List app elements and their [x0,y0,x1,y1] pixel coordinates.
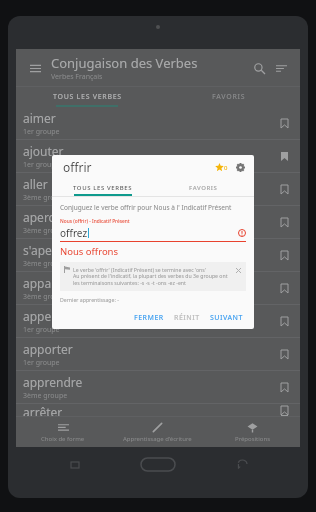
button[interactable]: Favorite [275,312,293,330]
staticText: 3ème groupe [23,391,68,401]
button[interactable]: FERMER [129,310,169,326]
staticText: apporter [23,341,73,357]
staticText: appeler [23,308,67,324]
button[interactable]: appeler [16,305,300,337]
button[interactable]: TOUS LES VERBES [52,179,153,196]
staticText: Le verbe 'offrir' (Indicatif Présent) se… [73,266,234,287]
button[interactable]: ajouter [16,140,300,172]
staticText: 0 [224,164,228,172]
staticText: 1er groupe [23,358,60,368]
staticText: aimer [23,110,56,126]
staticText: Nous offrons [60,245,119,258]
button[interactable]: apparaître [16,272,300,304]
staticText: 1er groupe [23,160,60,170]
button[interactable]: apercevoir [16,206,300,238]
staticText: SUIVANT [210,313,243,323]
button[interactable]: FAVORIS [158,87,300,107]
staticText: s'apercevoir [23,242,91,258]
button[interactable]: Search [248,57,270,79]
staticText: Prépositions [235,435,271,443]
staticText: Conjugaison des Verbes [51,54,198,72]
button[interactable]: apporter [16,338,300,370]
button[interactable]: Favorite [275,114,293,132]
staticText: Nous (offrir) - Indicatif Présent [60,218,130,225]
staticText: 3ème groupe [23,193,68,203]
staticText: apprendre [23,374,83,390]
button[interactable]: Favorite [275,378,293,396]
button[interactable]: arrêter [16,404,300,416]
button[interactable]: aimer [16,107,300,139]
staticText: offrir [63,159,92,175]
button[interactable]: TOUS LES VERBES [16,87,158,107]
staticText: offrez [60,226,88,240]
staticText: TOUS LES VERBES [53,92,122,102]
button[interactable]: Choix de forme [16,417,110,447]
button[interactable]: Sort [270,57,292,79]
button[interactable]: Apprentissage d'écriture [110,417,205,447]
staticText: 3ème groupe [23,226,68,236]
staticText: TOUS LES VERBES [73,184,133,192]
button[interactable]: Settings [233,160,248,175]
button[interactable]: Favorite [275,213,293,231]
staticText: aller [23,176,48,192]
staticText: Choix de forme [41,435,85,443]
staticText: FAVORIS [189,184,218,192]
button[interactable]: FAVORIS [153,179,254,196]
button[interactable]: Menu [24,57,46,79]
button[interactable]: RÉINIT [169,310,205,326]
staticText: arrêter [23,404,63,416]
staticText: Dernier apprentissage: - [60,296,119,303]
staticText: Verbes Français [51,72,103,82]
staticText: RÉINIT [174,313,200,323]
staticText: FERMER [134,313,164,323]
button[interactable]: s'apercevoir [16,239,300,271]
staticText: FAVORIS [212,92,246,102]
button[interactable]: Close hint [234,266,242,274]
button[interactable]: Favorite [275,147,293,165]
button[interactable]: Home [141,458,175,471]
button[interactable]: Favorite [275,180,293,198]
button[interactable]: Favorite [275,246,293,264]
button[interactable]: Recents [63,452,87,476]
staticText: 3ème groupe [23,292,68,302]
button[interactable]: Back [230,452,254,476]
button[interactable]: Favorite [275,279,293,297]
staticText: Apprentissage d'écriture [123,435,192,443]
button[interactable]: SUIVANT [205,310,248,326]
button[interactable]: Favorite [275,404,293,416]
staticText: 3ème groupe [23,259,68,269]
staticText: apercevoir [23,209,83,225]
button[interactable]: Prépositions [205,417,300,447]
button[interactable]: aller [16,173,300,205]
staticText: Conjuguez le verbe offrir pour Nous à l'… [60,203,232,212]
button[interactable]: Favorites count [213,161,230,174]
button[interactable]: apprendre [16,371,300,403]
staticText: ajouter [23,143,64,159]
staticText: 1er groupe [23,127,60,137]
staticText: apparaître [23,275,82,291]
button[interactable]: Favorite [275,345,293,363]
staticText: 1er groupe [23,325,60,335]
